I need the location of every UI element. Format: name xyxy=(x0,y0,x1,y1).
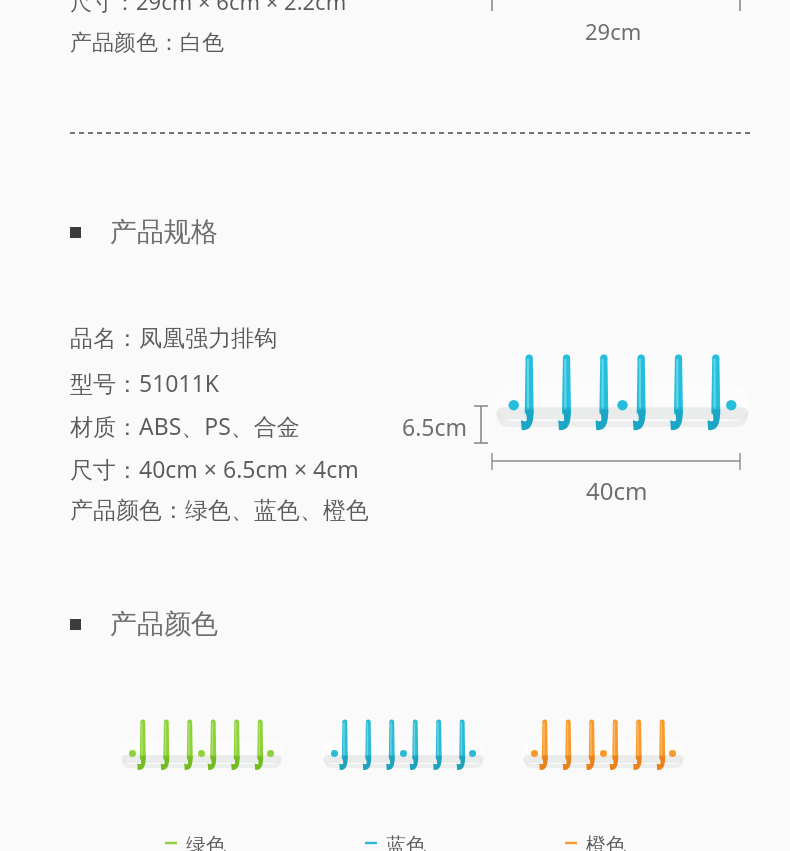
button[interactable]: Product specification page xyxy=(0,0,790,851)
